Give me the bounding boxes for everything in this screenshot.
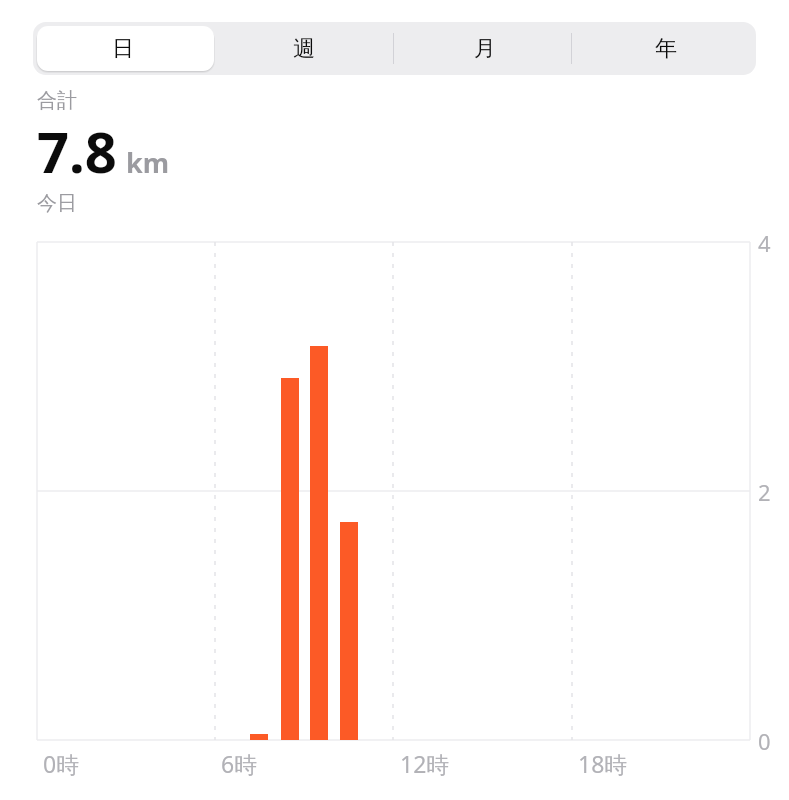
button[interactable]: 日: [33, 22, 213, 75]
staticText: 0時: [43, 748, 80, 779]
staticText: 4: [758, 228, 771, 258]
staticText: 6時: [221, 748, 258, 779]
staticText: 年: [655, 35, 677, 63]
staticText: km: [126, 144, 170, 181]
staticText: 0: [758, 726, 771, 756]
staticText: 週: [293, 35, 315, 63]
button[interactable]: 週: [213, 22, 394, 75]
button[interactable]: 月: [394, 22, 575, 75]
staticText: 月: [474, 35, 496, 63]
staticText: 2: [758, 477, 771, 507]
staticText: 合計: [37, 88, 77, 113]
staticText: 今日: [37, 191, 77, 216]
staticText: 日: [112, 35, 134, 63]
staticText: 7.8: [37, 113, 117, 189]
staticText: 18時: [578, 748, 628, 779]
button[interactable]: 年: [575, 22, 756, 75]
staticText: 12時: [400, 748, 450, 779]
